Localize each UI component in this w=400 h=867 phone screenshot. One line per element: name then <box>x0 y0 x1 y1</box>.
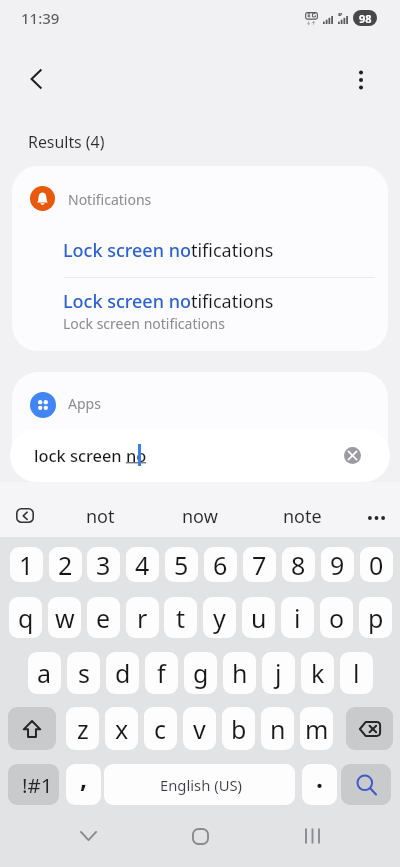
button[interactable]: a <box>28 652 61 694</box>
staticText: e <box>96 601 111 635</box>
staticText: Notifications <box>68 190 152 209</box>
staticText: a <box>37 656 52 690</box>
button[interactable]: Lock screen notifications <box>12 278 388 351</box>
button[interactable]: v <box>183 707 216 750</box>
button[interactable]: note <box>257 482 347 537</box>
staticText: . <box>316 764 324 795</box>
button[interactable]: f <box>145 652 178 694</box>
button[interactable]: !#1 <box>8 764 59 805</box>
button[interactable]: z <box>66 707 99 750</box>
button[interactable]: k <box>301 652 334 694</box>
button[interactable]: not <box>55 482 145 537</box>
staticText: 9 <box>330 548 345 582</box>
button[interactable]: o <box>320 597 353 638</box>
staticText: Lock screen notifications <box>63 289 274 314</box>
button[interactable]: c <box>144 707 177 750</box>
button[interactable]: Expand toolbar <box>9 504 41 526</box>
button[interactable]: 5 <box>165 547 198 582</box>
staticText: d <box>115 656 131 690</box>
button[interactable]: Clear search <box>336 439 369 472</box>
staticText: , <box>80 764 88 795</box>
button[interactable]: h <box>223 652 256 694</box>
button[interactable]: u <box>242 597 275 638</box>
button[interactable]: Recent apps <box>287 811 337 861</box>
button[interactable]: 3 <box>87 547 120 582</box>
button[interactable]: x <box>105 707 138 750</box>
staticText: 8 <box>291 548 306 582</box>
button[interactable]: t <box>164 597 197 638</box>
staticText: c <box>154 712 167 746</box>
staticText: Results (4) <box>28 131 105 153</box>
button[interactable]: g <box>184 652 217 694</box>
button[interactable]: p <box>359 597 392 638</box>
staticText: s <box>78 656 90 690</box>
button[interactable]: n <box>261 707 294 750</box>
staticText: v <box>193 712 206 746</box>
staticText: z <box>77 712 89 746</box>
staticText: i <box>294 601 301 635</box>
staticText: note <box>283 504 322 529</box>
button[interactable]: 4 <box>126 547 159 582</box>
staticText: !#1 <box>22 771 53 799</box>
staticText: 98 <box>359 11 372 26</box>
button[interactable]: English (US) <box>104 764 295 805</box>
staticText: 4 <box>135 548 150 582</box>
button[interactable]: now <box>155 482 245 537</box>
button[interactable]: 1 <box>10 547 43 582</box>
button[interactable]: r <box>126 597 159 638</box>
staticText: w <box>55 601 75 635</box>
staticText: 11:39 <box>21 8 60 28</box>
staticText: b <box>231 712 247 746</box>
button[interactable]: lock screen no <box>10 429 390 482</box>
button[interactable]: y <box>203 597 236 638</box>
button[interactable]: Home <box>175 811 225 861</box>
staticText: not <box>86 504 115 529</box>
button[interactable]: w <box>48 597 81 638</box>
button[interactable]: d <box>106 652 139 694</box>
staticText: k <box>311 656 325 690</box>
button[interactable]: Search <box>341 764 391 805</box>
staticText: q <box>18 601 34 635</box>
button[interactable]: s <box>67 652 100 694</box>
staticText: o <box>329 601 345 635</box>
button[interactable]: e <box>87 597 120 638</box>
staticText: m <box>305 712 329 746</box>
button[interactable]: . <box>302 764 337 805</box>
staticText: 2 <box>58 548 73 582</box>
button[interactable]: 8 <box>282 547 315 582</box>
button[interactable]: Navigate up <box>14 57 58 101</box>
button[interactable]: Shift <box>8 707 56 750</box>
button[interactable]: 0 <box>360 547 393 582</box>
button[interactable]: i <box>281 597 314 638</box>
button[interactable]: q <box>9 597 42 638</box>
button[interactable]: 9 <box>321 547 354 582</box>
button[interactable]: 2 <box>49 547 82 582</box>
staticText: x <box>115 712 129 746</box>
staticText: h <box>232 656 248 690</box>
button[interactable]: j <box>262 652 295 694</box>
button[interactable]: , <box>66 764 101 805</box>
button[interactable]: Backspace <box>346 707 393 750</box>
staticText: Lock screen notifications <box>63 238 274 263</box>
staticText: y <box>213 601 226 635</box>
staticText: 0 <box>369 548 384 582</box>
staticText: n <box>270 712 286 746</box>
button[interactable]: m <box>300 707 333 750</box>
button[interactable]: Hide keyboard <box>63 811 113 861</box>
staticText: g <box>193 656 209 690</box>
button[interactable]: More options <box>339 58 383 102</box>
button[interactable]: Lock screen notifications <box>12 230 388 277</box>
staticText: f <box>157 656 166 690</box>
button[interactable]: l <box>340 652 373 694</box>
button[interactable]: b <box>222 707 255 750</box>
staticText: t <box>176 601 186 635</box>
button[interactable]: 7 <box>243 547 276 582</box>
staticText: u <box>251 601 267 635</box>
staticText: j <box>275 656 282 690</box>
staticText: 3 <box>96 548 111 582</box>
staticText: r <box>137 601 148 635</box>
button[interactable]: 6 <box>204 547 237 582</box>
staticText: Lock screen notifications <box>63 314 225 333</box>
staticText: 7 <box>252 548 267 582</box>
button[interactable]: More suggestions <box>360 502 392 534</box>
